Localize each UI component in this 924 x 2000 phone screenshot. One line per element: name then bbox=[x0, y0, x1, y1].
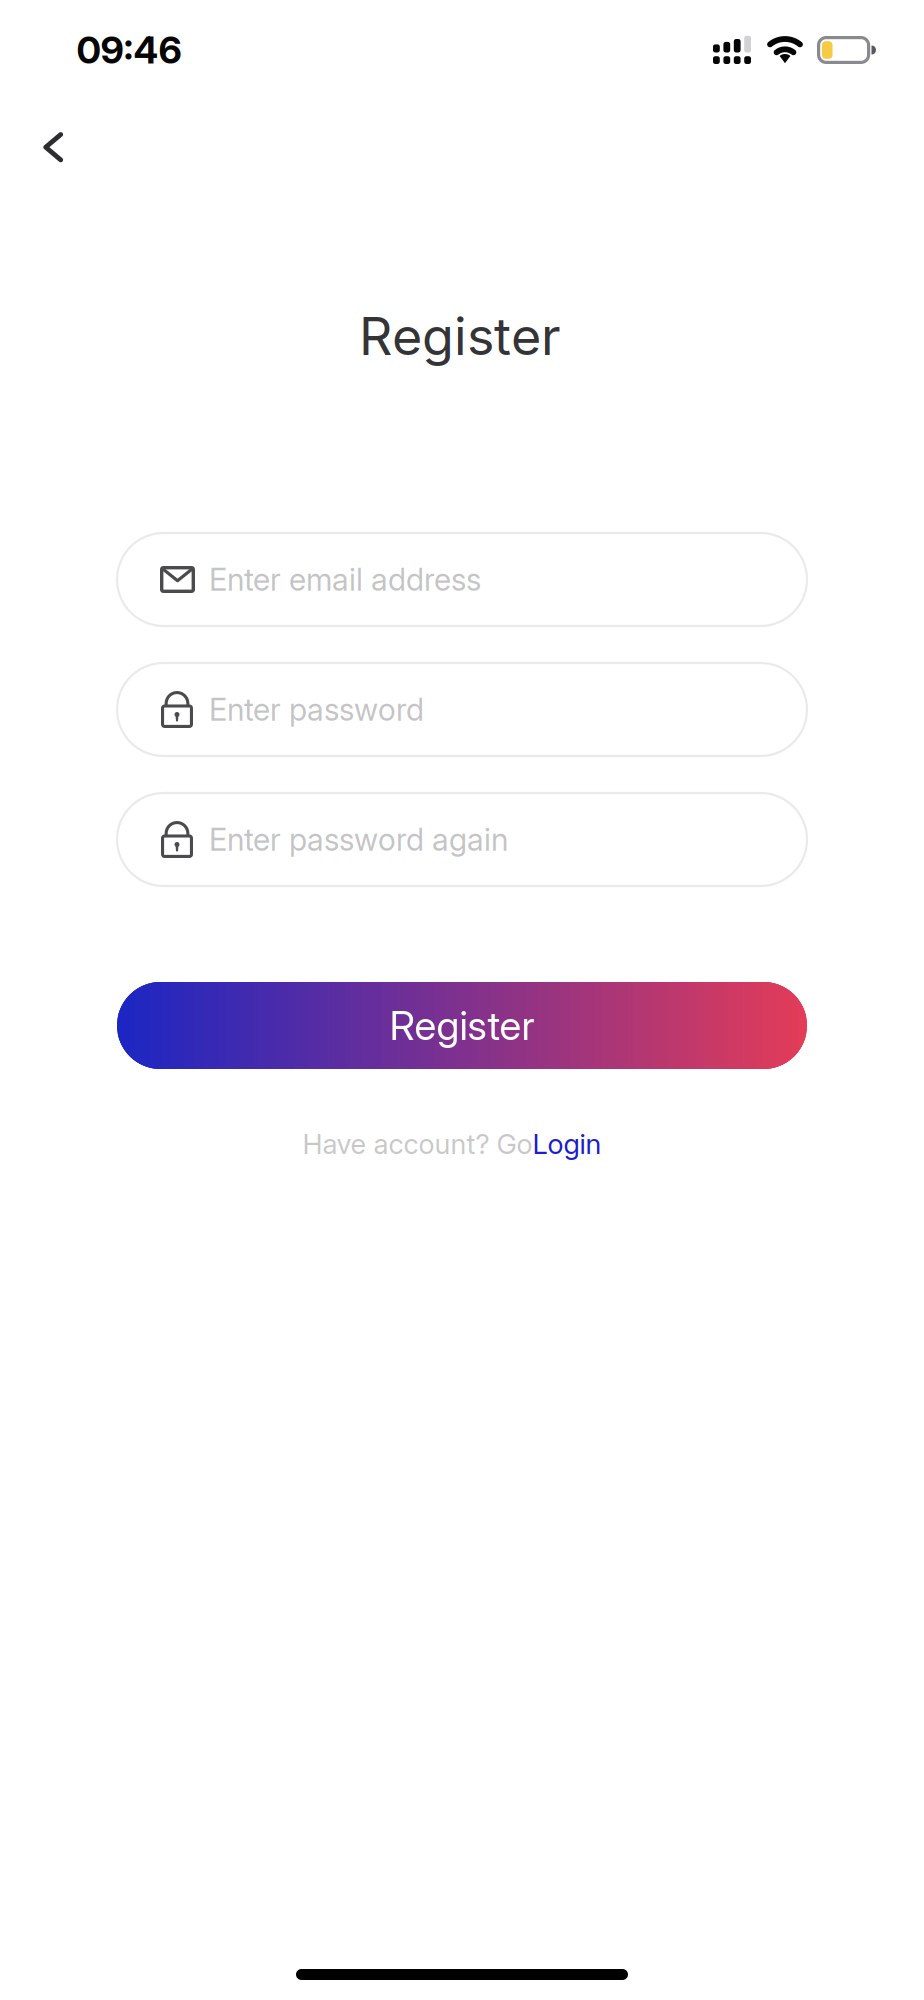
button[interactable]: Have account? Go Login bbox=[302, 1127, 601, 1161]
button[interactable]: Back bbox=[14, 109, 92, 187]
staticText: Register bbox=[389, 1001, 534, 1050]
button[interactable]: Register bbox=[117, 982, 807, 1069]
staticText: Enter password bbox=[209, 691, 424, 728]
staticText: Register bbox=[359, 304, 561, 367]
staticText: Login bbox=[532, 1127, 601, 1161]
staticText: Enter email address bbox=[209, 561, 481, 598]
button[interactable]: Enter email address bbox=[117, 533, 807, 626]
staticText: Enter password again bbox=[209, 821, 508, 858]
staticText: Have account? Go bbox=[302, 1127, 532, 1161]
staticText: 09:46 bbox=[76, 27, 181, 73]
button[interactable]: Enter password again bbox=[117, 793, 807, 886]
button[interactable]: Enter password bbox=[117, 663, 807, 756]
